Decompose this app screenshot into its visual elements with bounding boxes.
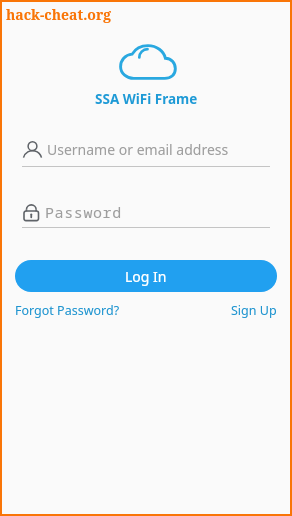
button[interactable]: Password	[22, 202, 270, 228]
button[interactable]: Log In	[15, 260, 277, 292]
button[interactable]: Sign Up	[231, 302, 277, 319]
button[interactable]: Username or email address	[22, 140, 270, 167]
staticText: Username or email address	[47, 140, 229, 159]
staticText: Password	[45, 202, 122, 222]
button[interactable]: Forgot Password?	[15, 302, 120, 319]
staticText: SSA WiFi Frame	[95, 90, 198, 108]
staticText: hack-cheat.org	[6, 5, 112, 24]
staticText: Log In	[125, 267, 167, 286]
